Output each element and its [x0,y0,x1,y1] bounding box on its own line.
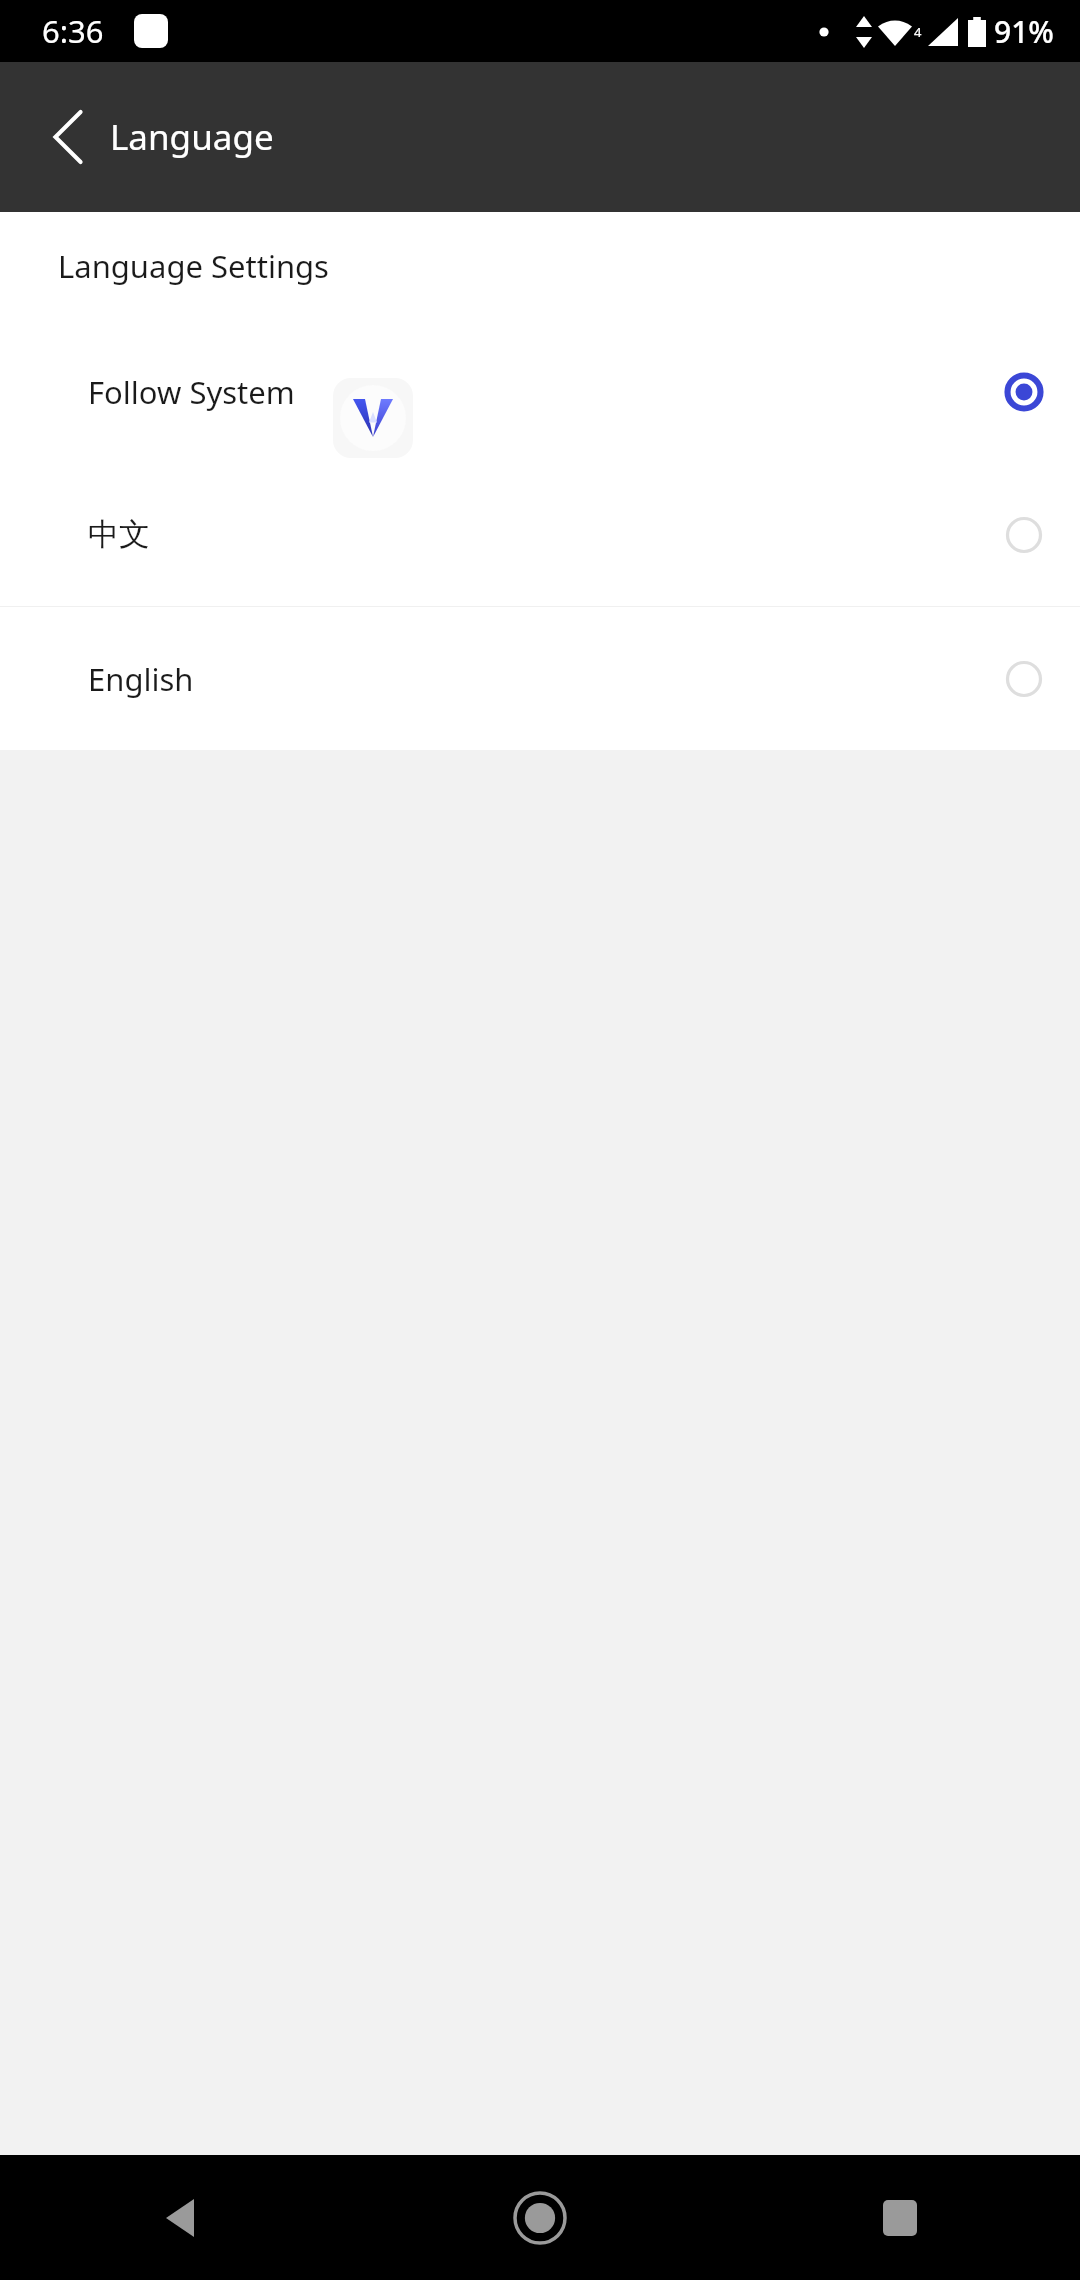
button[interactable]: Assistant [333,378,413,458]
button[interactable]: Back [20,89,116,185]
button[interactable]: Home [360,2155,720,2280]
button[interactable]: Back [0,2155,360,2280]
staticText: Language Settings [58,245,329,287]
staticText: 4 [914,23,922,41]
button[interactable]: Follow System [0,320,1080,463]
button[interactable]: 中文 [0,463,1080,606]
button[interactable]: Recent apps [720,2155,1080,2280]
button[interactable]: English [0,607,1080,750]
staticText: English [88,658,194,700]
staticText: Language [110,113,274,161]
staticText: 91% [994,11,1054,52]
staticText: Follow System [88,371,295,413]
staticText: 中文 [88,515,150,554]
staticText: 6:36 [42,10,104,52]
